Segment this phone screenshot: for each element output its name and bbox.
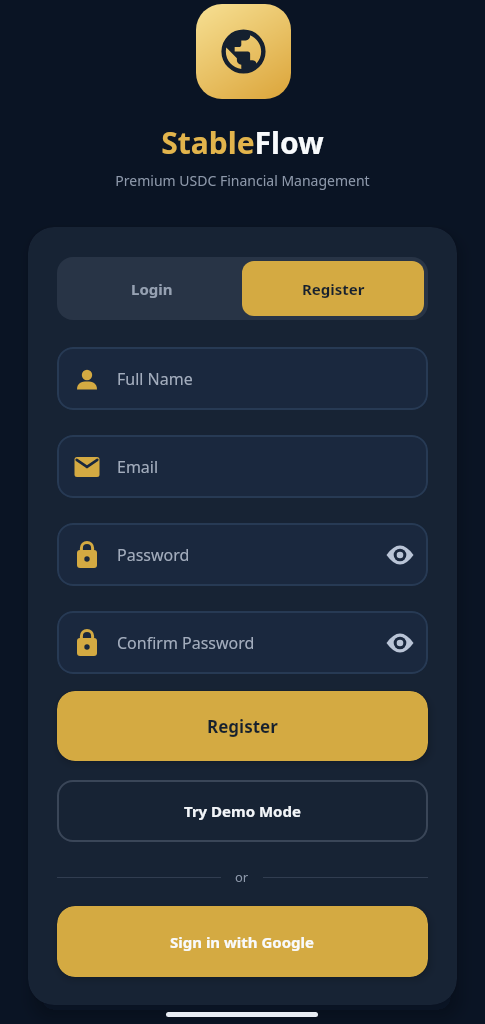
button[interactable]: Login (61, 261, 242, 316)
button[interactable]: Try Demo Mode (57, 780, 428, 842)
staticText: Register (302, 279, 365, 299)
button[interactable]: Register (57, 691, 428, 761)
button[interactable]: Password (57, 523, 428, 586)
staticText: or (235, 868, 249, 886)
button[interactable]: Sign in with Google (57, 906, 428, 977)
staticText: Premium USDC Financial Management (0, 171, 485, 190)
button[interactable]: Register (242, 261, 424, 316)
staticText: Full Name (117, 368, 193, 390)
staticText: Try Demo Mode (184, 801, 301, 821)
button[interactable]: Full Name (57, 347, 428, 410)
button[interactable]: Email (57, 435, 428, 498)
staticText: Sign in with Google (170, 932, 315, 952)
staticText: Register (207, 715, 278, 738)
staticText: Confirm Password (117, 632, 255, 654)
staticText: StableFlow (0, 122, 485, 163)
button[interactable]: Confirm Password (57, 611, 428, 674)
staticText: Login (131, 279, 173, 299)
staticText: Password (117, 544, 190, 566)
staticText: Email (117, 456, 159, 478)
